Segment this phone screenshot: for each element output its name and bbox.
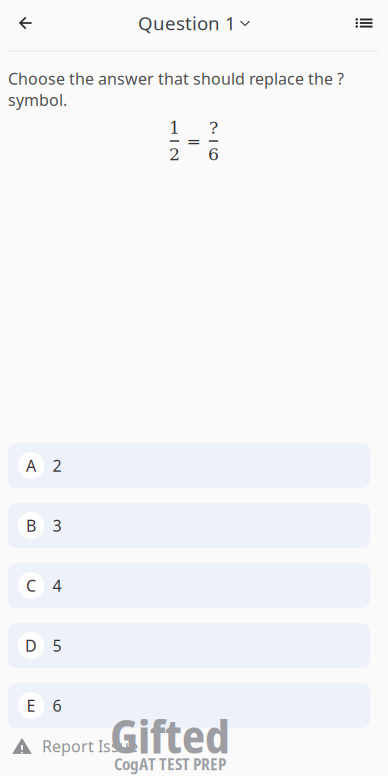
staticText: A bbox=[26, 455, 36, 476]
staticText: 6 bbox=[52, 695, 61, 716]
staticText: 4 bbox=[52, 575, 61, 596]
button[interactable]: A bbox=[8, 443, 370, 488]
staticText: 3 bbox=[52, 515, 61, 536]
staticText: C bbox=[26, 575, 36, 596]
staticText: Question 1 bbox=[138, 11, 236, 35]
button[interactable]: B bbox=[8, 503, 370, 548]
button[interactable]: C bbox=[8, 563, 370, 608]
staticText: 6 bbox=[208, 144, 219, 164]
staticText: 1 bbox=[169, 118, 180, 138]
staticText: Choose the answer that should replace th… bbox=[8, 68, 344, 110]
staticText: Report Issue bbox=[42, 735, 138, 757]
staticText: B bbox=[26, 515, 36, 536]
button[interactable]: D bbox=[8, 623, 370, 668]
staticText: 2 bbox=[169, 144, 180, 164]
button[interactable]: Question list bbox=[342, 0, 386, 46]
staticText: Gifted bbox=[110, 705, 230, 767]
staticText: D bbox=[25, 635, 37, 656]
staticText: CogAT TEST PREP bbox=[114, 753, 226, 775]
button[interactable]: E bbox=[8, 683, 370, 728]
staticText: = bbox=[186, 131, 201, 151]
button[interactable]: Back bbox=[3, 0, 47, 46]
button[interactable]: Question 1 bbox=[128, 0, 260, 46]
staticText: 5 bbox=[52, 635, 61, 656]
staticText: ? bbox=[209, 118, 218, 138]
staticText: 2 bbox=[52, 455, 61, 476]
button[interactable]: Report Issue bbox=[0, 731, 200, 761]
staticText: E bbox=[26, 695, 35, 716]
